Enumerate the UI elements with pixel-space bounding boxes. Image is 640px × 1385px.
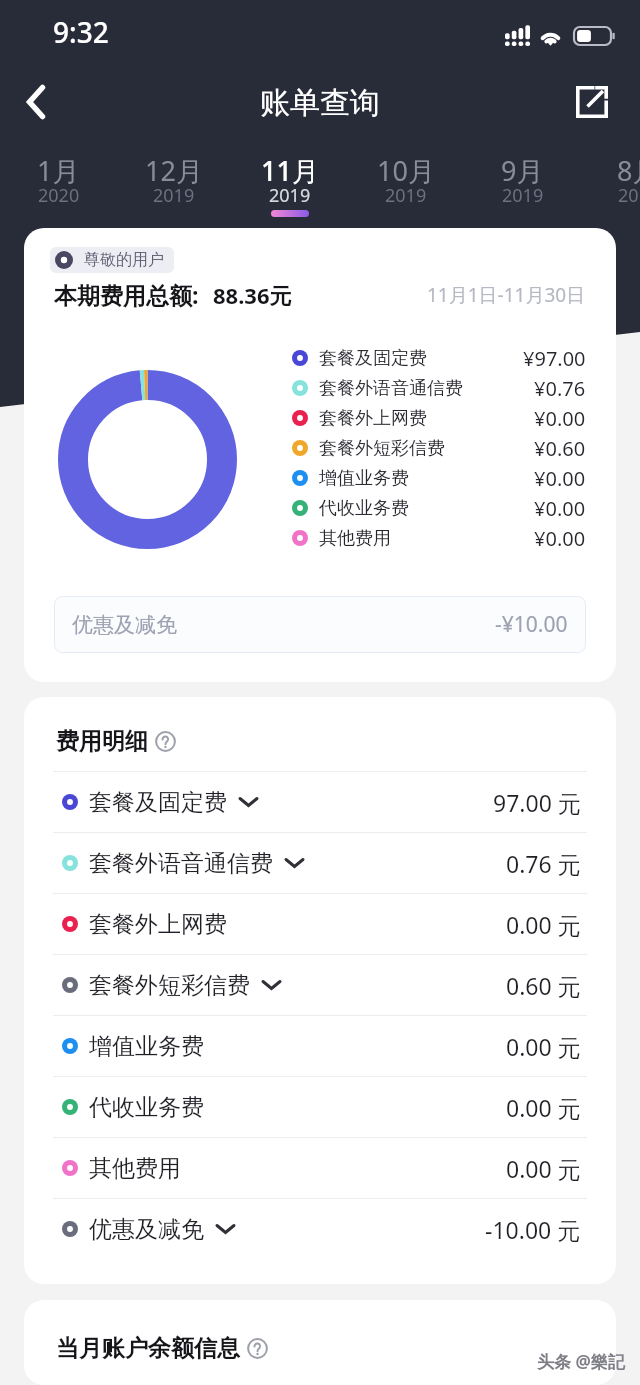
staticText: 2020 bbox=[38, 183, 80, 208]
staticText: 2019 bbox=[153, 183, 195, 208]
staticText: 当月账户余额信息 bbox=[56, 1334, 240, 1363]
staticText: 套餐外上网费 bbox=[89, 910, 227, 939]
staticText: 0.60 元 bbox=[506, 970, 581, 1001]
staticText: 88.36元 bbox=[213, 280, 292, 310]
staticText: 2019 bbox=[269, 183, 311, 208]
button[interactable]: 套餐外语音通信费 bbox=[53, 833, 587, 893]
staticText: 套餐外语音通信费 bbox=[89, 849, 273, 878]
button[interactable]: 9月 bbox=[464, 142, 580, 215]
staticText: 套餐外语音通信费 bbox=[319, 377, 463, 400]
staticText: 2019 bbox=[618, 183, 640, 208]
button[interactable]: Share bbox=[556, 66, 628, 138]
staticText: 0.00 元 bbox=[506, 1153, 581, 1184]
staticText: -¥10.00 bbox=[495, 610, 568, 639]
button[interactable]: 代收业务费 bbox=[53, 1077, 587, 1137]
staticText: 尊敬的用户 bbox=[84, 250, 164, 270]
staticText: 0.76 元 bbox=[506, 848, 581, 879]
staticText: 本期费用总额: bbox=[54, 279, 199, 310]
button[interactable]: 12月 bbox=[116, 142, 232, 215]
staticText: ¥0.76 bbox=[534, 375, 586, 402]
button[interactable]: 套餐外上网费 bbox=[53, 894, 587, 954]
staticText: 优惠及减免 bbox=[72, 612, 177, 638]
button[interactable]: 套餐外短彩信费 bbox=[53, 955, 587, 1015]
staticText: 其他费用 bbox=[89, 1154, 181, 1183]
staticText: 套餐外短彩信费 bbox=[319, 437, 445, 460]
staticText: 代收业务费 bbox=[89, 1093, 204, 1122]
staticText: 其他费用 bbox=[319, 527, 391, 550]
staticText: -10.00 元 bbox=[485, 1214, 581, 1245]
staticText: 10月 bbox=[377, 152, 435, 189]
staticText: ¥0.00 bbox=[534, 525, 586, 552]
button[interactable]: Back bbox=[0, 66, 72, 138]
staticText: 套餐及固定费 bbox=[319, 347, 427, 370]
button[interactable]: 10月 bbox=[348, 142, 464, 215]
staticText: 2019 bbox=[385, 183, 427, 208]
button[interactable]: 其他费用 bbox=[53, 1138, 587, 1198]
staticText: 账单查询 bbox=[260, 84, 380, 122]
staticText: 11月1日-11月30日 bbox=[427, 282, 586, 308]
staticText: 套餐外短彩信费 bbox=[89, 971, 250, 1000]
button[interactable]: 8月 bbox=[580, 142, 640, 215]
staticText: 0.00 元 bbox=[506, 1031, 581, 1062]
staticText: 1月 bbox=[37, 152, 80, 189]
staticText: 9:32 bbox=[53, 13, 109, 51]
staticText: ¥0.00 bbox=[534, 465, 586, 492]
staticText: 代收业务费 bbox=[319, 497, 409, 520]
staticText: 97.00 元 bbox=[493, 787, 581, 818]
staticText: ¥0.00 bbox=[534, 405, 586, 432]
staticText: 0.00 元 bbox=[506, 909, 581, 940]
button[interactable]: 增值业务费 bbox=[53, 1016, 587, 1076]
staticText: 费用明细 bbox=[56, 727, 148, 756]
staticText: 头条 @樂記 bbox=[537, 1350, 625, 1373]
button[interactable]: 优惠及减免 bbox=[53, 1199, 587, 1259]
staticText: ¥0.60 bbox=[534, 435, 586, 462]
button[interactable]: 11月 bbox=[232, 142, 348, 215]
staticText: 套餐外上网费 bbox=[319, 407, 427, 430]
staticText: 8月 bbox=[617, 152, 640, 189]
staticText: 11月 bbox=[261, 152, 319, 189]
staticText: ¥97.00 bbox=[523, 345, 586, 372]
staticText: 增值业务费 bbox=[89, 1032, 204, 1061]
staticText: 0.00 元 bbox=[506, 1092, 581, 1123]
staticText: 优惠及减免 bbox=[89, 1215, 204, 1244]
staticText: ¥0.00 bbox=[534, 495, 586, 522]
staticText: 9月 bbox=[501, 152, 544, 189]
staticText: 12月 bbox=[145, 152, 203, 189]
staticText: 套餐及固定费 bbox=[89, 788, 227, 817]
button[interactable]: 套餐及固定费 bbox=[53, 772, 587, 832]
button[interactable]: 1月 bbox=[0, 142, 116, 215]
staticText: 2019 bbox=[502, 183, 544, 208]
staticText: 增值业务费 bbox=[319, 467, 409, 490]
